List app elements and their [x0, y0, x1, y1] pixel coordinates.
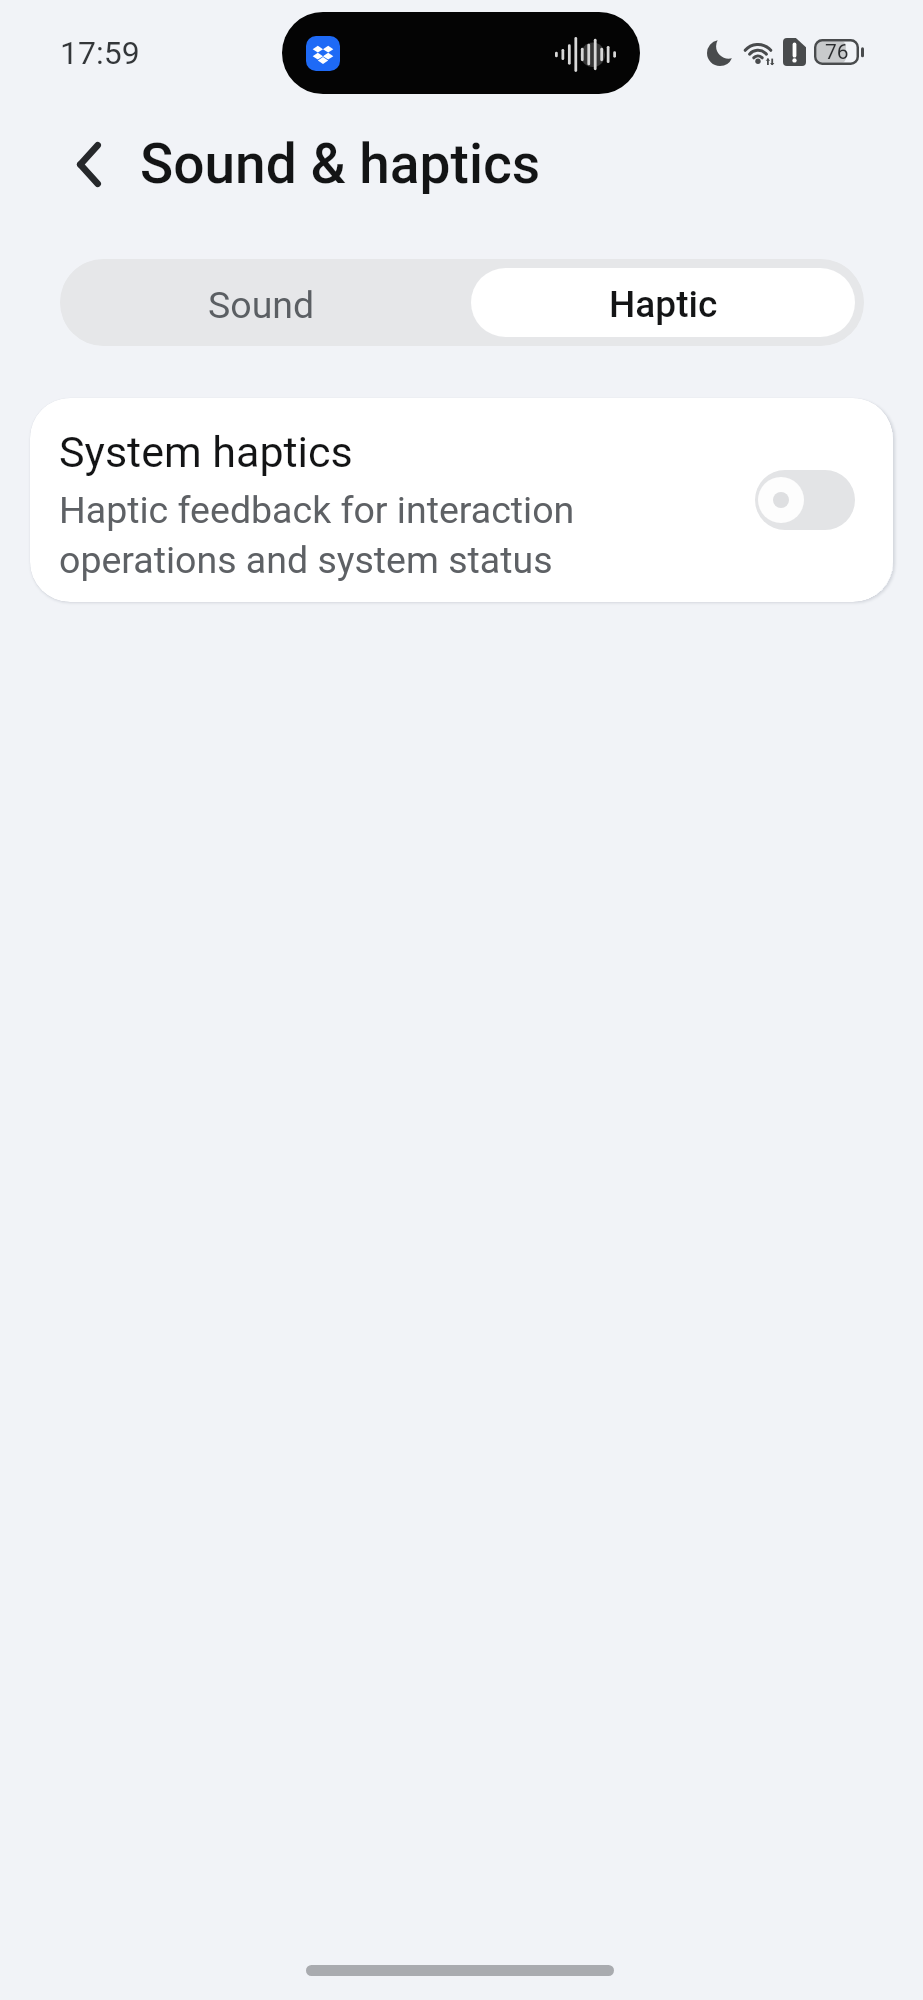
button[interactable]: Haptic [471, 268, 855, 337]
staticText: Sound [208, 283, 315, 327]
button[interactable]: Back [61, 128, 117, 200]
button[interactable]: System haptics [30, 398, 893, 602]
staticText: 17:59 [60, 34, 140, 72]
staticText: 76 [825, 40, 849, 65]
button[interactable]: System haptics toggle [755, 470, 855, 530]
button[interactable]: Sound [60, 259, 462, 346]
staticText: Haptic [609, 283, 718, 326]
staticText: System haptics [59, 427, 353, 477]
staticText: Sound & haptics [140, 132, 541, 196]
staticText: Haptic feedback for interaction operatio… [59, 488, 575, 582]
